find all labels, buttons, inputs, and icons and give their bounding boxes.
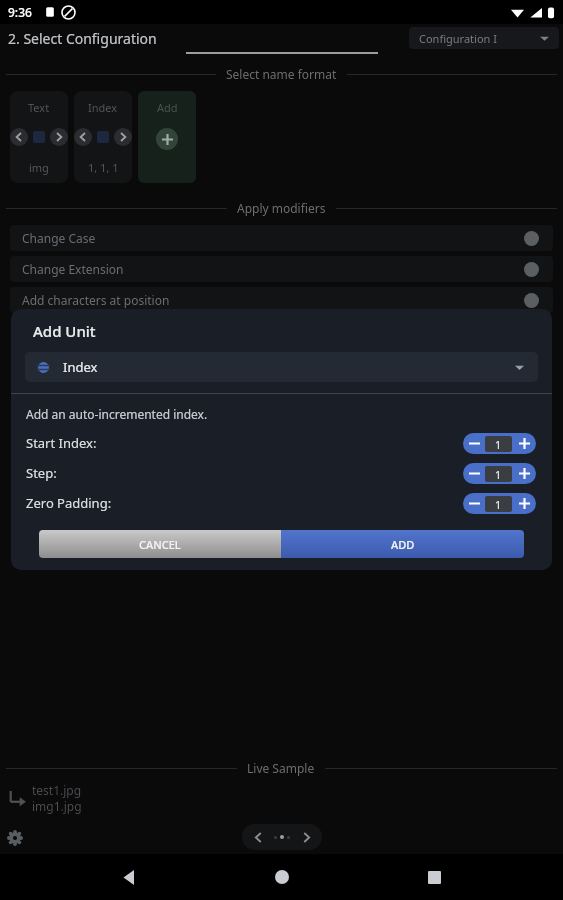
staticText: 9:36 (8, 4, 32, 20)
staticText: Change Case (22, 230, 96, 246)
staticText: Add an auto-incremented index. (26, 406, 208, 422)
staticText: img1.jpg (32, 798, 82, 814)
staticText: Add Unit (33, 321, 96, 341)
button[interactable]: Change Case (10, 225, 553, 251)
button[interactable]: 1 (485, 466, 512, 482)
staticText: Text (28, 100, 50, 115)
staticText: 1, 1, 1 (88, 160, 119, 175)
staticText: 2. Select Configuration (8, 29, 157, 48)
staticText: 1 (495, 467, 502, 482)
button[interactable]: Previous (248, 827, 268, 847)
button[interactable]: Increase (512, 493, 536, 514)
button[interactable]: Text (10, 91, 68, 183)
button[interactable]: Next (114, 128, 132, 146)
button[interactable]: Decrease (463, 433, 485, 454)
staticText: 1 (495, 497, 502, 512)
staticText: Add (157, 100, 178, 115)
staticText: img (29, 160, 49, 175)
button[interactable]: Change Extension (10, 256, 553, 282)
staticText: Zero Padding: (26, 494, 112, 512)
button[interactable]: Settings (5, 828, 25, 848)
staticText: Index (88, 100, 118, 115)
button[interactable]: Recents (411, 854, 457, 900)
button[interactable]: Index (74, 91, 132, 183)
button[interactable]: Index (25, 352, 538, 382)
button[interactable]: 1 (485, 436, 512, 452)
button[interactable]: Add characters at position (10, 287, 553, 313)
staticText: Step: (26, 464, 57, 482)
staticText: Index (63, 358, 98, 376)
button[interactable]: CANCEL (39, 530, 281, 558)
button[interactable]: Back (106, 854, 152, 900)
staticText: ADD (391, 537, 415, 552)
button[interactable]: Home (259, 854, 305, 900)
staticText: Select name format (226, 66, 337, 82)
staticText: 1 (495, 437, 502, 452)
button[interactable]: 1 (485, 496, 512, 512)
staticText: test1.jpg (32, 782, 82, 798)
button[interactable]: Add (138, 91, 196, 183)
button[interactable]: Next (50, 128, 68, 146)
button[interactable]: Next (296, 827, 316, 847)
staticText: Live Sample (247, 760, 315, 776)
staticText: Start Index: (26, 434, 97, 452)
button[interactable]: Configuration I (409, 27, 559, 49)
button[interactable]: Previous (74, 128, 92, 146)
button[interactable]: Increase (512, 433, 536, 454)
button[interactable]: Previous (10, 128, 28, 146)
button[interactable]: ADD (281, 530, 524, 558)
staticText: Apply modifiers (237, 200, 326, 216)
button[interactable]: Decrease (463, 463, 485, 484)
button[interactable]: Decrease (463, 493, 485, 514)
staticText: Add characters at position (22, 292, 170, 308)
staticText: Change Extension (22, 261, 124, 277)
button[interactable]: Increase (512, 463, 536, 484)
staticText: CANCEL (139, 537, 181, 552)
staticText: Configuration I (419, 31, 497, 46)
